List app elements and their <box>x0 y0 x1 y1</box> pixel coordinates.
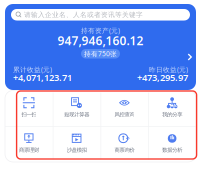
staticText: +473,295.97 <box>137 71 188 84</box>
button[interactable]: 请输入企业名、人名或者资讯等关键字 <box>11 9 190 20</box>
staticText: 扫一扫 <box>21 111 36 118</box>
staticText: 我的分享 <box>162 111 182 118</box>
staticText: 累计收益(元) <box>13 65 52 74</box>
button[interactable]: 数据分析 <box>148 126 196 162</box>
staticText: 数据分析 <box>162 147 182 153</box>
staticText: 持有750张 <box>84 49 117 58</box>
staticText: 商票理财 <box>19 147 39 153</box>
button[interactable]: 贴现计算器 <box>53 91 101 126</box>
button[interactable]: 风控查询 <box>100 91 148 126</box>
staticText: 贴现计算器 <box>64 111 89 118</box>
button[interactable]: 商票理财 <box>5 126 53 162</box>
button[interactable]: 我的分享 <box>148 91 196 126</box>
staticText: 风控查询 <box>114 111 134 118</box>
staticText: 请输入企业名、人名或者资讯等关键字 <box>24 11 143 19</box>
staticText: 昨日收益(元) <box>149 65 188 74</box>
staticText: +4,071,123.71 <box>13 71 72 84</box>
staticText: 持有资产(元) <box>81 26 120 35</box>
staticText: 沙盘模拟 <box>67 147 87 153</box>
staticText: 商票询价 <box>114 147 134 153</box>
button[interactable]: 扫一扫 <box>5 91 53 126</box>
button[interactable]: 沙盘模拟 <box>53 126 101 162</box>
button[interactable]: 商票询价 <box>100 126 148 162</box>
button[interactable]: 查看详情 <box>186 52 194 62</box>
staticText: 947,946,160.12 <box>57 32 143 48</box>
